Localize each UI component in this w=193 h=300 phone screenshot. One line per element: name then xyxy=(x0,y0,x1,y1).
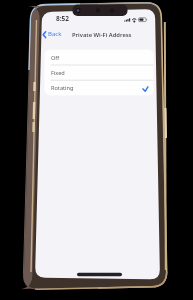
staticText: 8:52 xyxy=(56,14,69,23)
staticText: Rotating xyxy=(51,84,74,92)
button[interactable]: Back xyxy=(42,29,64,40)
staticText: Back xyxy=(48,30,62,38)
staticText: Off xyxy=(51,54,60,62)
staticText: Fixed xyxy=(51,69,65,77)
button[interactable]: Off xyxy=(45,50,153,65)
button[interactable]: Rotating xyxy=(45,80,153,95)
staticText: Private Wi-Fi Address xyxy=(72,31,132,39)
button[interactable]: Fixed xyxy=(45,65,153,80)
